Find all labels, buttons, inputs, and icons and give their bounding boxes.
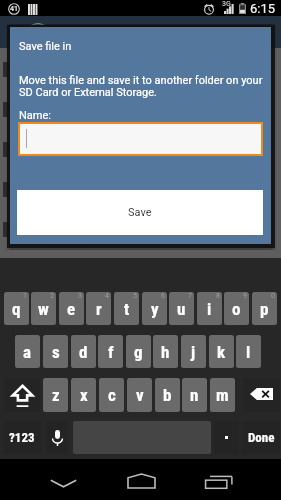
staticText: SD Card or External Storage. bbox=[19, 86, 157, 99]
staticText: c bbox=[108, 385, 116, 405]
button[interactable]: k bbox=[209, 335, 234, 368]
staticText: l bbox=[246, 342, 251, 362]
staticText: o bbox=[232, 299, 241, 319]
button[interactable]: r bbox=[86, 292, 111, 325]
button[interactable]: v bbox=[127, 378, 152, 412]
staticText: Name: bbox=[19, 109, 51, 122]
button[interactable] bbox=[18, 122, 263, 156]
button[interactable]: y bbox=[142, 292, 167, 325]
button[interactable]: c bbox=[99, 378, 124, 412]
staticText: 8 bbox=[216, 292, 220, 300]
button[interactable]: Backspace bbox=[243, 378, 280, 412]
button[interactable]: j bbox=[181, 335, 206, 368]
staticText: 9 bbox=[243, 292, 247, 300]
staticText: 10 items bbox=[46, 237, 89, 250]
staticText: 4 bbox=[105, 292, 109, 300]
staticText: Done bbox=[248, 430, 275, 445]
staticText: 2 bbox=[50, 292, 54, 300]
staticText: x bbox=[80, 385, 88, 405]
staticText: d bbox=[79, 342, 88, 362]
staticText: 41 bbox=[10, 5, 18, 13]
staticText: n bbox=[190, 385, 199, 405]
staticText: u bbox=[177, 299, 186, 319]
button[interactable]: Done bbox=[242, 421, 280, 454]
staticText: z bbox=[52, 385, 60, 405]
staticText: p bbox=[260, 299, 269, 319]
button[interactable]: d bbox=[71, 335, 96, 368]
button[interactable]: o bbox=[224, 292, 249, 325]
staticText: w bbox=[38, 299, 49, 319]
staticText: h bbox=[161, 342, 170, 362]
staticText: 6:15 bbox=[250, 1, 276, 16]
button[interactable]: b bbox=[155, 378, 180, 412]
button[interactable]: ?123 bbox=[3, 421, 41, 454]
button[interactable]: n bbox=[182, 378, 207, 412]
button[interactable]: p bbox=[252, 292, 277, 325]
button[interactable]: f bbox=[98, 335, 123, 368]
button[interactable]: x bbox=[71, 378, 96, 412]
staticText: 6 bbox=[161, 292, 165, 300]
staticText: a bbox=[23, 342, 32, 362]
staticText: q bbox=[12, 299, 21, 319]
button[interactable]: l bbox=[236, 335, 261, 368]
button[interactable]: m bbox=[210, 378, 235, 412]
button[interactable]: g bbox=[126, 335, 151, 368]
button[interactable]: a bbox=[15, 335, 40, 368]
staticText: Move this file and save it to another fo… bbox=[19, 74, 263, 87]
button[interactable]: w bbox=[31, 292, 56, 325]
staticText: t bbox=[124, 299, 130, 319]
staticText: b bbox=[163, 385, 172, 405]
button[interactable]: t bbox=[114, 292, 139, 325]
button[interactable]: Recents bbox=[196, 459, 244, 500]
staticText: s bbox=[52, 342, 60, 362]
staticText: k bbox=[217, 342, 226, 362]
button[interactable]: Save bbox=[17, 190, 263, 235]
staticText: 3G bbox=[222, 0, 231, 8]
staticText: Save bbox=[128, 206, 152, 219]
staticText: v bbox=[136, 385, 144, 405]
staticText: 7 bbox=[188, 292, 192, 300]
staticText: j bbox=[191, 342, 196, 362]
button[interactable]: u bbox=[169, 292, 194, 325]
button[interactable]: s bbox=[43, 335, 68, 368]
staticText: 3 bbox=[78, 292, 82, 300]
staticText: m bbox=[216, 385, 229, 405]
button[interactable]: i bbox=[197, 292, 222, 325]
button[interactable]: q bbox=[4, 292, 29, 325]
staticText: f bbox=[108, 342, 114, 362]
staticText: i bbox=[207, 299, 212, 319]
button[interactable]: h bbox=[153, 335, 178, 368]
button[interactable]: e bbox=[59, 292, 84, 325]
button[interactable]: Voice input bbox=[46, 421, 68, 454]
button[interactable]: Home bbox=[117, 459, 165, 500]
button[interactable]: Back bbox=[40, 459, 88, 500]
staticText: g bbox=[134, 342, 143, 362]
staticText: y bbox=[151, 299, 159, 319]
button[interactable]: Shift bbox=[4, 378, 40, 412]
button[interactable]: Period bbox=[214, 421, 239, 454]
staticText: ?123 bbox=[9, 430, 35, 445]
staticText: r bbox=[96, 299, 102, 319]
staticText: Save file in bbox=[19, 40, 72, 53]
staticText: 1 bbox=[23, 292, 27, 300]
staticText: e bbox=[67, 299, 76, 319]
staticText: 0 bbox=[271, 292, 275, 300]
button[interactable]: z bbox=[43, 378, 68, 412]
staticText: 5 bbox=[133, 292, 137, 300]
